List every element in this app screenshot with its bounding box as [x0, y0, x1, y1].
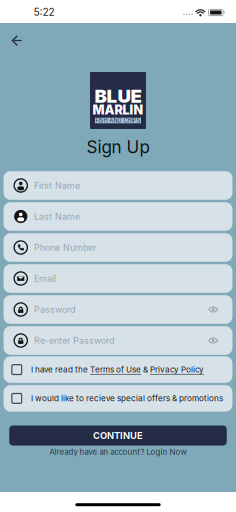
staticText: Sign Up [86, 137, 149, 157]
staticText: I have read the Terms of Use & Privacy P… [31, 365, 204, 374]
button[interactable]: First Name [3, 171, 232, 200]
button[interactable]: I have read the Terms of Use & Privacy P… [3, 356, 232, 383]
staticText: Password [34, 304, 75, 315]
staticText: Re-enter Password [34, 335, 114, 346]
staticText: CONTINUE [93, 430, 143, 441]
staticText: Email [34, 273, 56, 284]
button[interactable]: Already have an account? Login Now [43, 445, 193, 459]
staticText: FISH AND CHIPS [95, 117, 140, 124]
staticText: I would like to recieve special offers &… [31, 393, 223, 403]
staticText: First Name [34, 180, 80, 191]
button[interactable]: CONTINUE [9, 425, 227, 445]
staticText: MARLIN [92, 102, 143, 118]
button[interactable]: Password [3, 295, 232, 324]
staticText: Phone Number [34, 242, 96, 253]
button[interactable]: I would like to recieve special offers &… [3, 385, 232, 412]
button[interactable]: Last Name [3, 202, 232, 231]
button[interactable]: Re-enter Password [3, 326, 232, 355]
button[interactable]: Phone Number [3, 233, 232, 262]
staticText: Already have an account? Login Now [49, 447, 186, 457]
staticText: BLUE [94, 85, 141, 107]
staticText: Last Name [34, 211, 80, 222]
button[interactable]: Back [3, 29, 29, 53]
staticText: 5:22 [33, 6, 54, 18]
button[interactable]: Email [3, 264, 232, 293]
